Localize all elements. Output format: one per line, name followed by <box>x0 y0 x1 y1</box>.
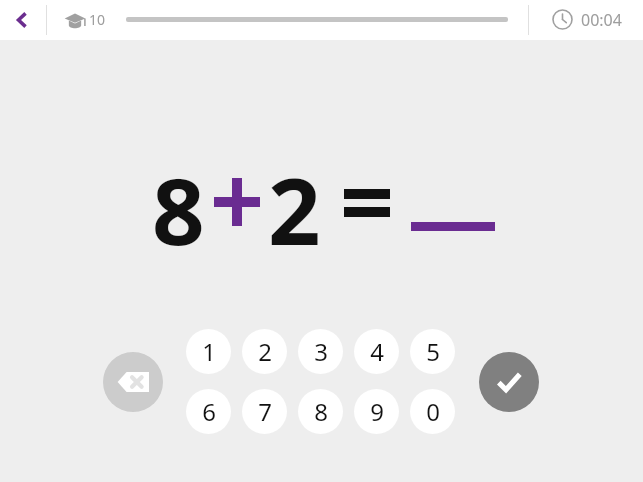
button[interactable]: 9 <box>354 389 399 434</box>
staticText: 0 <box>426 395 440 428</box>
button[interactable]: 3 <box>298 329 343 374</box>
staticText: 8 <box>152 147 205 272</box>
staticText: 7 <box>258 395 272 428</box>
button[interactable]: 8 <box>298 389 343 434</box>
staticText: 5 <box>426 335 440 368</box>
button[interactable]: 1 <box>186 329 231 374</box>
button[interactable]: 6 <box>186 389 231 434</box>
staticText: 10 <box>89 10 106 29</box>
button[interactable]: Confirm <box>479 352 539 412</box>
button[interactable]: 4 <box>354 329 399 374</box>
staticText: 6 <box>202 395 216 428</box>
button[interactable]: Back <box>0 0 44 40</box>
button[interactable]: 2 <box>242 329 287 374</box>
staticText: 4 <box>370 335 384 368</box>
button[interactable]: 5 <box>410 329 455 374</box>
staticText: 2 <box>268 147 321 272</box>
staticText: 00:04 <box>581 9 622 31</box>
staticText: 1 <box>202 335 216 368</box>
staticText: 8 <box>314 395 328 428</box>
button[interactable]: Backspace <box>103 352 163 412</box>
staticText: 2 <box>258 335 272 368</box>
staticText: 3 <box>314 335 328 368</box>
button[interactable]: 0 <box>410 389 455 434</box>
staticText: 9 <box>370 395 384 428</box>
button[interactable]: 7 <box>242 389 287 434</box>
